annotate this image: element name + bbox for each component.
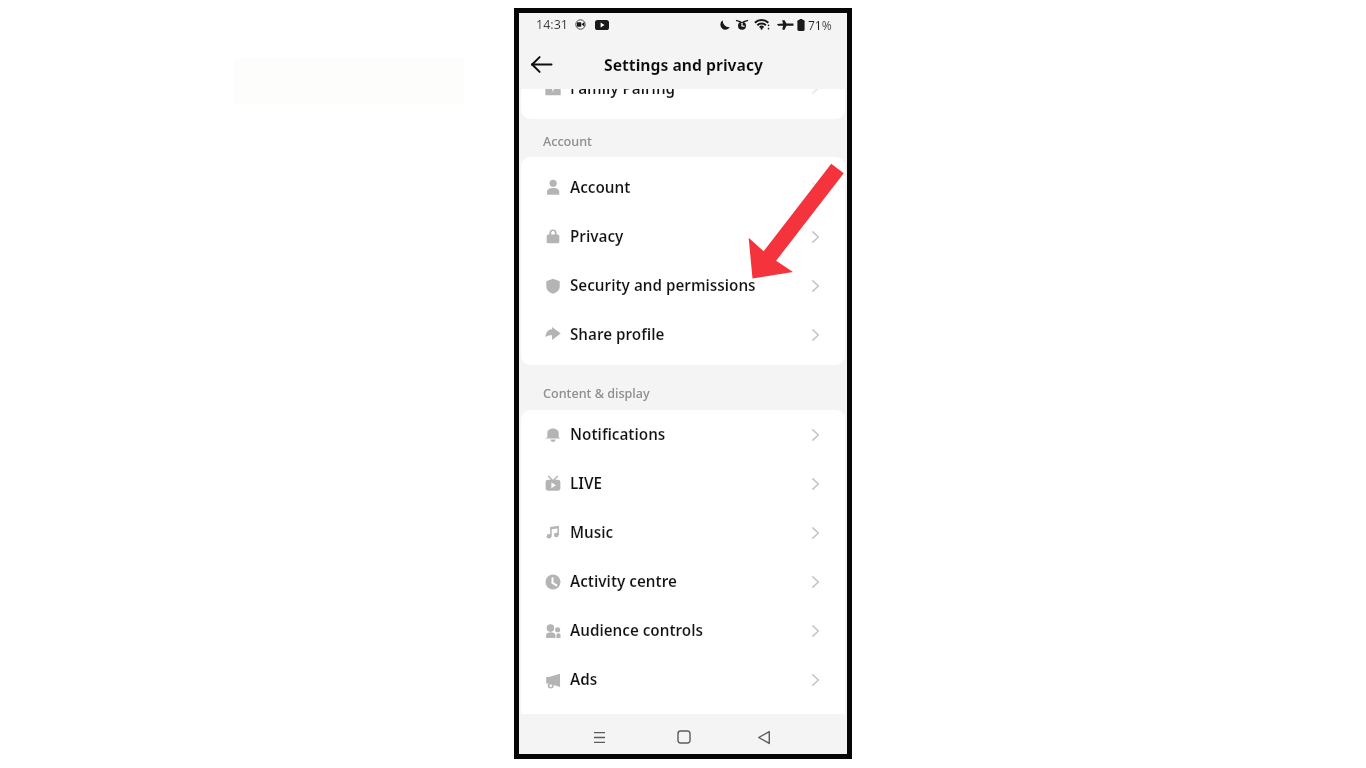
staticText: Family Pairing xyxy=(570,89,676,99)
button[interactable]: Account xyxy=(521,163,845,212)
button[interactable]: Family Pairing xyxy=(521,89,845,103)
button[interactable]: Audience controls xyxy=(521,606,845,655)
button[interactable]: Back xyxy=(527,50,555,78)
button[interactable]: Recent apps xyxy=(585,723,613,751)
staticText: Content & display xyxy=(543,385,650,402)
staticText: Music xyxy=(570,522,614,543)
button[interactable]: Home xyxy=(670,723,698,751)
staticText: Account xyxy=(543,133,592,150)
staticText: Audience controls xyxy=(570,620,704,641)
button[interactable]: Music xyxy=(521,508,845,557)
staticText: Account xyxy=(570,177,631,198)
staticText: Security and permissions xyxy=(570,275,756,296)
staticText: 14:31 xyxy=(536,16,568,33)
staticText: Settings and privacy xyxy=(604,54,763,75)
staticText: Ads xyxy=(570,669,598,690)
button[interactable]: Share profile xyxy=(521,310,845,359)
button[interactable]: Activity centre xyxy=(521,557,845,606)
staticText: Activity centre xyxy=(570,571,677,592)
staticText: Notifications xyxy=(570,424,666,445)
staticText: LIVE xyxy=(570,473,602,494)
button[interactable]: LIVE xyxy=(521,459,845,508)
button[interactable]: Notifications xyxy=(521,410,845,459)
staticText: Share profile xyxy=(570,324,665,345)
staticText: 71% xyxy=(808,17,832,33)
button[interactable]: Ads xyxy=(521,655,845,704)
staticText: Privacy xyxy=(570,226,624,247)
button[interactable]: Security and permissions xyxy=(521,261,845,310)
button[interactable]: Back xyxy=(750,723,778,751)
button[interactable]: Privacy xyxy=(521,212,845,261)
